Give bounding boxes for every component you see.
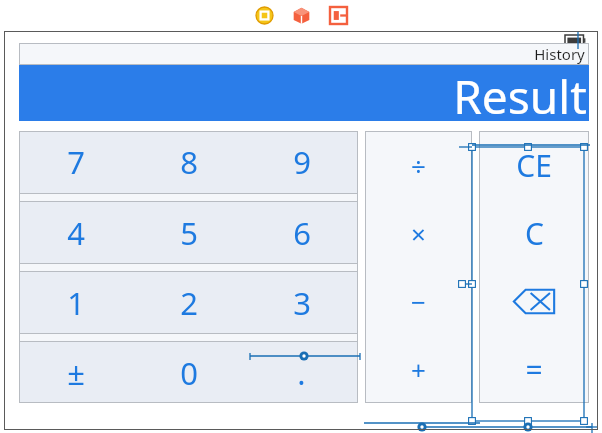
button[interactable]: CE	[479, 131, 589, 199]
button[interactable]: 2	[132, 272, 245, 333]
button[interactable]: 8	[132, 131, 245, 193]
button[interactable]: ×	[365, 199, 472, 267]
staticText: 4	[67, 212, 85, 254]
staticText: 6	[293, 212, 311, 254]
staticText: ×	[411, 216, 426, 251]
button[interactable]: −	[365, 267, 472, 335]
button[interactable]: 6	[245, 202, 358, 263]
button[interactable]: =	[479, 335, 589, 403]
button[interactable]: 5	[132, 202, 245, 263]
button[interactable]: 4	[19, 202, 132, 263]
staticText: 2	[180, 282, 198, 324]
button[interactable]: Split view	[330, 7, 347, 24]
staticText: +	[411, 352, 426, 387]
button[interactable]: 3	[245, 272, 358, 333]
button[interactable]: Blueprint view	[293, 7, 310, 24]
staticText: 9	[293, 141, 311, 183]
button[interactable]: C	[479, 199, 589, 267]
staticText: −	[411, 284, 426, 319]
button[interactable]: 0	[132, 342, 245, 403]
button[interactable]: 1	[19, 272, 132, 333]
button[interactable]: ±	[19, 342, 132, 403]
staticText: 8	[180, 141, 198, 183]
staticText: CE	[516, 145, 552, 186]
staticText: ÷	[411, 148, 426, 183]
staticText: Result	[453, 65, 587, 121]
staticText: 7	[67, 141, 85, 183]
staticText: History	[534, 44, 585, 64]
button[interactable]: Backspace	[479, 267, 589, 335]
button[interactable]: 7	[19, 131, 132, 193]
staticText: .	[297, 352, 306, 394]
button[interactable]: ÷	[365, 131, 472, 199]
staticText: C	[525, 213, 544, 254]
button[interactable]: Design mode	[256, 7, 273, 24]
staticText: ±	[67, 352, 85, 394]
staticText: =	[525, 349, 543, 390]
staticText: 0	[180, 352, 198, 394]
staticText: 1	[67, 282, 85, 324]
button[interactable]: .	[245, 342, 358, 403]
button[interactable]: History	[19, 43, 589, 65]
button[interactable]: +	[365, 335, 472, 403]
button[interactable]: Result	[19, 65, 589, 121]
button[interactable]: 9	[245, 131, 358, 193]
staticText: 3	[293, 282, 311, 324]
staticText: 5	[180, 212, 198, 254]
